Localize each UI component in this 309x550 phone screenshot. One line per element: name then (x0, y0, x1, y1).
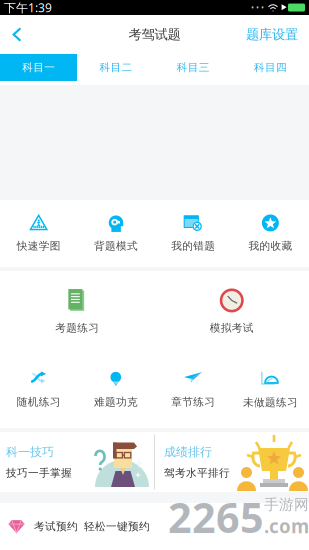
button[interactable]: 科目二 (77, 54, 154, 81)
staticText: 未做题练习 (243, 396, 298, 409)
button[interactable]: 成绩排行 (155, 432, 309, 492)
button[interactable]: 考题练习 (0, 271, 154, 352)
staticText: 我的错题 (171, 239, 215, 252)
staticText: 手游网 (264, 496, 309, 514)
button[interactable]: 科目三 (154, 54, 232, 81)
staticText: 科目四 (254, 61, 287, 74)
staticText: 快速学图 (17, 239, 61, 252)
staticText: 科目二 (99, 61, 132, 74)
staticText: 下午1:39 (4, 0, 52, 15)
staticText: 背题模式 (94, 239, 138, 252)
button[interactable]: 快速学图 (0, 200, 77, 267)
staticText: 科目一 (22, 61, 55, 74)
staticText: 难题功克 (94, 395, 138, 408)
staticText: 2265 (168, 490, 264, 544)
button[interactable]: 科目一 (0, 54, 77, 81)
button[interactable]: 难题功克 (77, 352, 154, 428)
staticText: 随机练习 (17, 395, 61, 408)
button[interactable]: 未做题练习 (232, 352, 309, 428)
button[interactable]: 返回 (0, 15, 36, 54)
staticText: .com (264, 514, 309, 538)
staticText: 我的收藏 (248, 239, 292, 252)
button[interactable]: 章节练习 (154, 352, 232, 428)
button[interactable]: 模拟考试 (154, 271, 309, 352)
staticText: 成绩排行 (164, 445, 212, 459)
staticText: 章节练习 (171, 395, 215, 408)
button[interactable]: 我的收藏 (232, 200, 309, 267)
staticText: 模拟考试 (210, 321, 254, 334)
staticText: 题库设置 (246, 26, 298, 43)
button[interactable]: 我的错题 (154, 200, 232, 267)
staticText: 驾考水平排行 (164, 466, 230, 479)
button[interactable]: 考试预约 轻松一键预约 (0, 503, 309, 550)
button[interactable]: 题库设置 (236, 15, 309, 54)
staticText: 考驾试题 (128, 26, 180, 43)
staticText: 技巧一手掌握 (6, 466, 72, 479)
staticText: 考试预约 轻松一键预约 (34, 520, 150, 533)
staticText: • • • (251, 2, 264, 13)
staticText: 科目三 (177, 61, 210, 74)
button[interactable]: 随机练习 (0, 352, 77, 428)
button[interactable]: 背题模式 (77, 200, 154, 267)
button[interactable]: 科一技巧 (0, 432, 154, 492)
staticText: 科一技巧 (6, 445, 54, 459)
staticText: 考题练习 (55, 321, 99, 334)
button[interactable]: 科目四 (232, 54, 309, 81)
